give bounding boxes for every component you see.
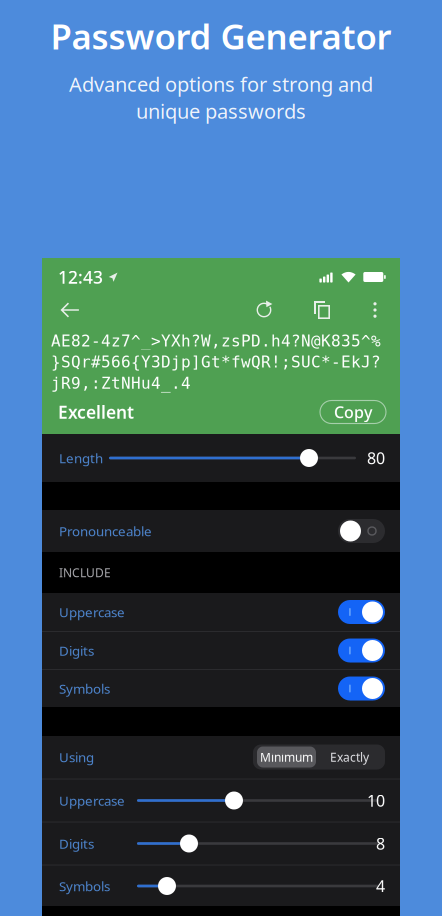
staticText: jR9,:ZtNHu4_.4 bbox=[51, 374, 191, 392]
button[interactable]: Exactly bbox=[318, 746, 381, 767]
button[interactable]: Copy bbox=[320, 400, 386, 423]
staticText: INCLUDE bbox=[59, 564, 111, 580]
staticText: Symbols bbox=[59, 877, 110, 895]
button[interactable]: Copy password bbox=[302, 293, 342, 327]
staticText: Digits bbox=[59, 835, 94, 852]
staticText: Copy bbox=[334, 401, 372, 423]
staticText: 80 bbox=[367, 447, 385, 469]
staticText: Using bbox=[59, 748, 94, 766]
staticText: }SQr#566{Y3Djp]Gt*fwQR!;SUC*-EkJ? bbox=[51, 353, 381, 371]
staticText: Uppercase bbox=[59, 792, 125, 809]
button[interactable]: Pronounceable bbox=[42, 510, 400, 552]
staticText: Uppercase bbox=[59, 603, 125, 621]
button[interactable]: Uppercase bbox=[42, 593, 400, 631]
staticText: unique passwords bbox=[136, 98, 306, 124]
staticText: 12:43 bbox=[58, 265, 103, 288]
button[interactable]: Minimum bbox=[257, 746, 316, 767]
staticText: Minimum bbox=[260, 749, 313, 765]
staticText: 8 bbox=[376, 833, 385, 854]
staticText: Pronounceable bbox=[59, 522, 152, 540]
button[interactable]: Symbols bbox=[42, 670, 400, 707]
button[interactable]: Digits bbox=[42, 632, 400, 669]
staticText: Password Generator bbox=[50, 13, 391, 59]
staticText: Digits bbox=[59, 642, 94, 659]
staticText: Symbols bbox=[59, 680, 110, 697]
staticText: 10 bbox=[367, 790, 385, 811]
button[interactable]: More options bbox=[360, 293, 390, 327]
staticText: Excellent bbox=[58, 400, 134, 423]
staticText: 4 bbox=[376, 875, 385, 897]
staticText: Length bbox=[59, 449, 103, 467]
staticText: AE82-4z7^_>YXh?W,zsPD.h4?N@K835^% bbox=[51, 332, 381, 350]
staticText: Exactly bbox=[330, 749, 369, 765]
button[interactable]: Regenerate bbox=[244, 293, 284, 327]
staticText: Advanced options for strong and bbox=[69, 71, 373, 97]
button[interactable]: Back bbox=[50, 293, 90, 327]
